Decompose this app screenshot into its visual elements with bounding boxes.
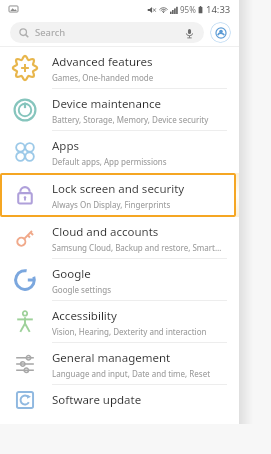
- button[interactable]: Account: [210, 22, 231, 43]
- button[interactable]: Search: [10, 22, 204, 43]
- staticText: Search: [35, 26, 66, 39]
- button[interactable]: Apps: [0, 131, 239, 173]
- staticText: Samsung Cloud, Backup and restore, Smart…: [52, 242, 222, 253]
- button[interactable]: General management: [0, 343, 239, 385]
- staticText: Default apps, App permissions: [52, 156, 167, 167]
- button[interactable]: Device maintenance: [0, 89, 239, 131]
- staticText: Accessibility: [52, 308, 117, 324]
- staticText: Always On Display, Fingerprints: [52, 199, 171, 210]
- staticText: Language and input, Date and time, Reset: [52, 368, 211, 379]
- staticText: Software update: [52, 392, 142, 408]
- button[interactable]: Software update: [0, 385, 239, 415]
- button[interactable]: Accessibility: [0, 301, 239, 343]
- staticText: 14:33: [206, 3, 231, 16]
- button[interactable]: Google: [0, 259, 239, 301]
- button[interactable]: Voice search: [182, 26, 196, 40]
- button[interactable]: Cloud and accounts: [0, 217, 239, 259]
- staticText: Google: [52, 266, 91, 282]
- staticText: Battery, Storage, Memory, Device securit…: [52, 114, 209, 125]
- staticText: Advanced features: [52, 54, 153, 70]
- staticText: Lock screen and security: [52, 181, 185, 197]
- staticText: Google settings: [52, 284, 111, 295]
- staticText: Apps: [52, 138, 80, 154]
- staticText: Device maintenance: [52, 96, 162, 112]
- staticText: Cloud and accounts: [52, 224, 159, 240]
- button[interactable]: Advanced features: [0, 47, 239, 89]
- staticText: 95%: [180, 4, 196, 15]
- staticText: Vision, Hearing, Dexterity and interacti…: [52, 326, 207, 337]
- staticText: General management: [52, 350, 171, 366]
- staticText: Games, One-handed mode: [52, 72, 154, 83]
- button[interactable]: Lock screen and security: [0, 173, 236, 217]
